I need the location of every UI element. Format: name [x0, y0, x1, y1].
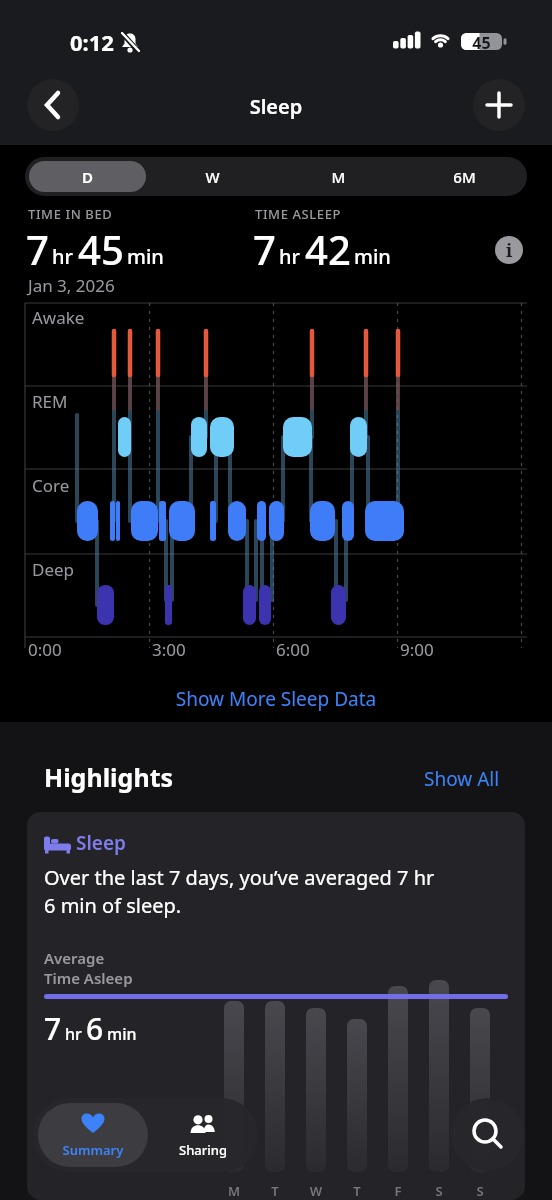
staticText: Jan 3, 2026	[28, 274, 115, 297]
button[interactable]: i	[495, 236, 523, 264]
button[interactable]: Summary	[38, 1103, 148, 1167]
button[interactable]: Show All	[424, 766, 500, 792]
staticText: Average	[44, 948, 105, 968]
staticText: 42	[305, 222, 351, 276]
button[interactable]: 6M	[402, 167, 527, 187]
button[interactable]: Sleep	[27, 812, 525, 1200]
staticText: 6	[86, 1008, 104, 1049]
staticText: Sleep	[76, 830, 126, 856]
staticText: Core	[32, 474, 70, 497]
staticText: hr	[65, 1023, 82, 1045]
staticText: hr	[279, 243, 300, 270]
staticText: 7	[253, 222, 276, 276]
staticText: i	[506, 238, 513, 263]
button[interactable]: Show More Sleep Data	[0, 686, 552, 712]
staticText: T	[265, 1182, 285, 1200]
staticText: min	[107, 1023, 137, 1045]
staticText: min	[354, 243, 391, 270]
staticText: TIME IN BED	[28, 205, 113, 223]
staticText: M	[224, 1182, 244, 1200]
button[interactable]: D	[25, 167, 150, 187]
staticText: 9:00	[400, 638, 434, 661]
staticText: Sharing	[153, 1141, 253, 1159]
staticText: Deep	[32, 558, 75, 581]
staticText: 6:00	[276, 638, 310, 661]
button[interactable]	[451, 1098, 524, 1171]
staticText: Highlights	[44, 760, 174, 794]
staticText: 45	[78, 222, 124, 276]
staticText: TIME ASLEEP	[255, 205, 342, 223]
staticText: F	[388, 1182, 408, 1200]
staticText: hr	[52, 243, 73, 270]
staticText: W	[306, 1182, 326, 1200]
staticText: S	[429, 1182, 449, 1200]
button[interactable]	[27, 79, 79, 131]
staticText: 3:00	[152, 638, 186, 661]
button[interactable]	[473, 79, 525, 131]
staticText: 0:12	[70, 27, 114, 57]
staticText: 45	[461, 32, 502, 54]
button[interactable]: W	[150, 167, 275, 187]
staticText: Summary	[38, 1141, 148, 1159]
staticText: Over the last 7 days, you’ve averaged 7 …	[44, 864, 435, 919]
staticText: 0:00	[28, 638, 62, 661]
button[interactable]: M	[276, 167, 401, 187]
button[interactable]: Sharing	[153, 1103, 253, 1167]
staticText: 7	[26, 222, 49, 276]
staticText: REM	[32, 390, 68, 413]
staticText: 7	[44, 1008, 62, 1049]
staticText: Awake	[32, 306, 85, 329]
staticText: Time Asleep	[44, 968, 133, 988]
staticText: S	[470, 1182, 490, 1200]
staticText: min	[127, 243, 164, 270]
button[interactable]	[29, 161, 146, 192]
staticText: T	[347, 1182, 367, 1200]
staticText: Sleep	[0, 93, 552, 120]
